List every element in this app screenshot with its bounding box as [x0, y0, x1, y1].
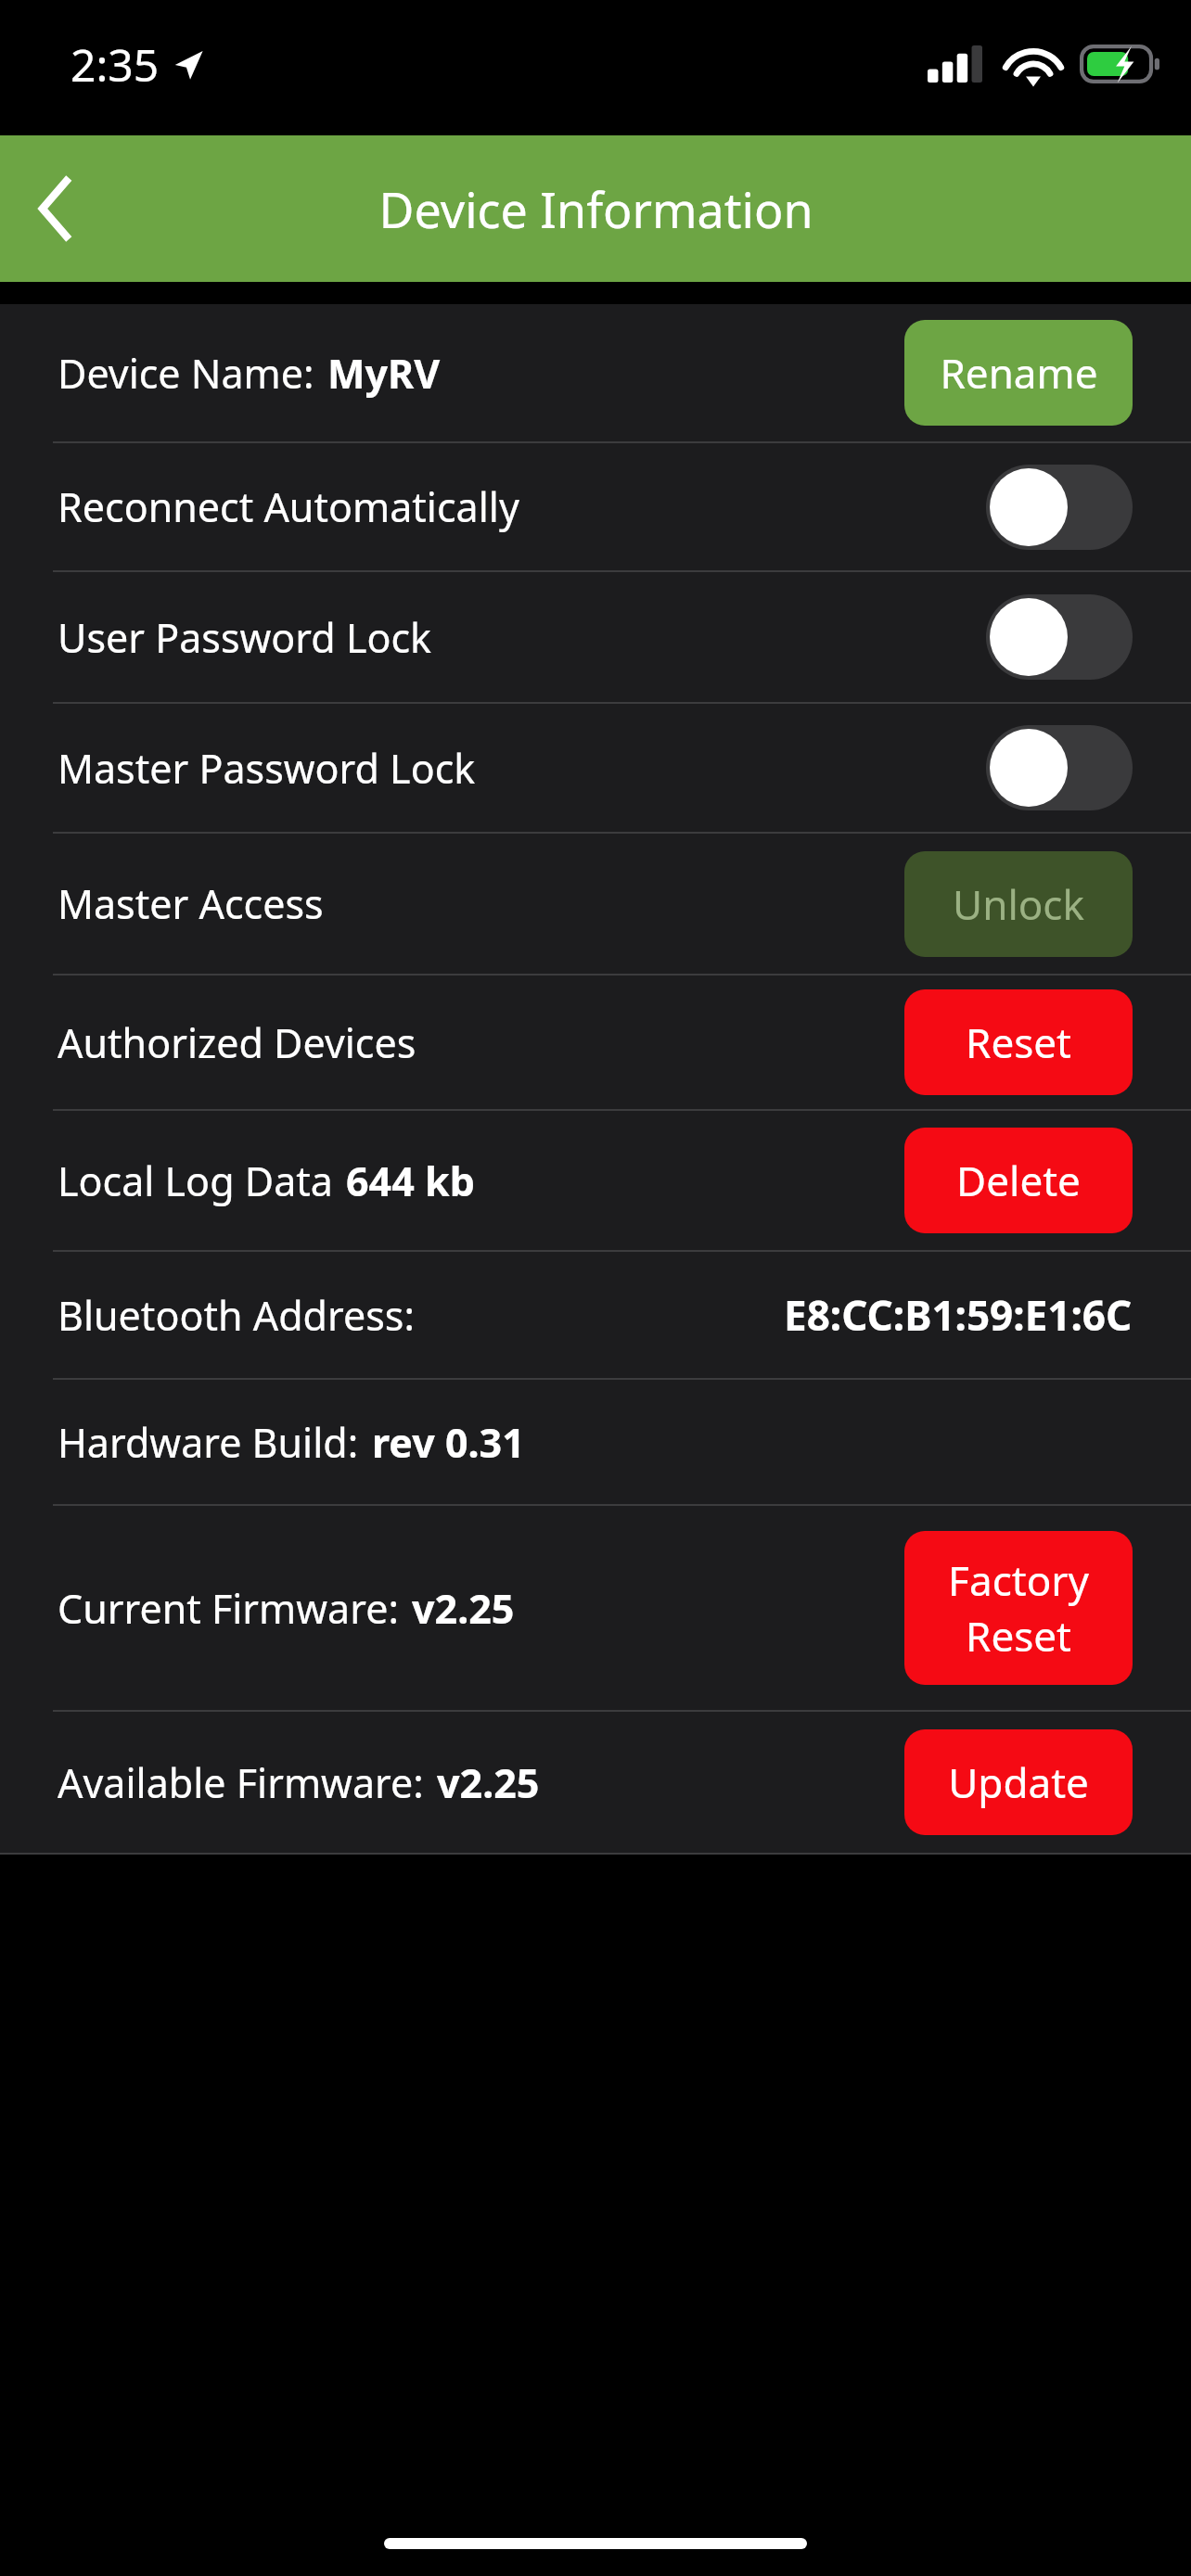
- staticText: Hardware Build:: [58, 1415, 359, 1470]
- staticText: Factory: [948, 1552, 1089, 1608]
- staticText: Update: [948, 1754, 1089, 1810]
- staticText: Current Firmware:: [58, 1581, 399, 1636]
- staticText: Device Information: [378, 176, 813, 242]
- staticText: Master Access: [58, 876, 324, 931]
- staticText: MyRV: [327, 346, 441, 401]
- button[interactable]: Unlock: [904, 851, 1133, 957]
- staticText: 644 kb: [346, 1154, 475, 1208]
- staticText: Available Firmware:: [58, 1755, 424, 1810]
- staticText: rev 0.31: [372, 1415, 525, 1470]
- staticText: E8:CC:B1:59:E1:6C: [784, 1287, 1133, 1343]
- button[interactable]: Factory: [904, 1531, 1133, 1685]
- staticText: v2.25: [412, 1581, 515, 1636]
- button[interactable]: Reset: [904, 989, 1133, 1095]
- button[interactable]: Delete: [904, 1128, 1133, 1233]
- staticText: Rename: [940, 345, 1098, 401]
- staticText: Delete: [956, 1153, 1081, 1208]
- button[interactable]: Back: [0, 135, 111, 282]
- staticText: Master Password Lock: [58, 741, 476, 796]
- staticText: Reset: [966, 1608, 1071, 1664]
- staticText: Reset: [966, 1014, 1071, 1070]
- staticText: Authorized Devices: [58, 1015, 416, 1070]
- staticText: Reconnect Automatically: [58, 479, 519, 534]
- button[interactable]: Update: [904, 1729, 1133, 1835]
- staticText: User Password Lock: [58, 610, 432, 665]
- staticText: Bluetooth Address:: [58, 1288, 415, 1343]
- staticText: 2:35: [70, 34, 160, 95]
- staticText: v2.25: [437, 1755, 540, 1810]
- staticText: Device Name:: [58, 346, 314, 401]
- button[interactable]: Toggle: [986, 465, 1133, 550]
- staticText: Unlock: [953, 876, 1084, 932]
- staticText: Local Log Data: [58, 1154, 333, 1208]
- button[interactable]: Rename: [904, 320, 1133, 426]
- button[interactable]: Toggle: [986, 594, 1133, 680]
- button[interactable]: Toggle: [986, 725, 1133, 810]
